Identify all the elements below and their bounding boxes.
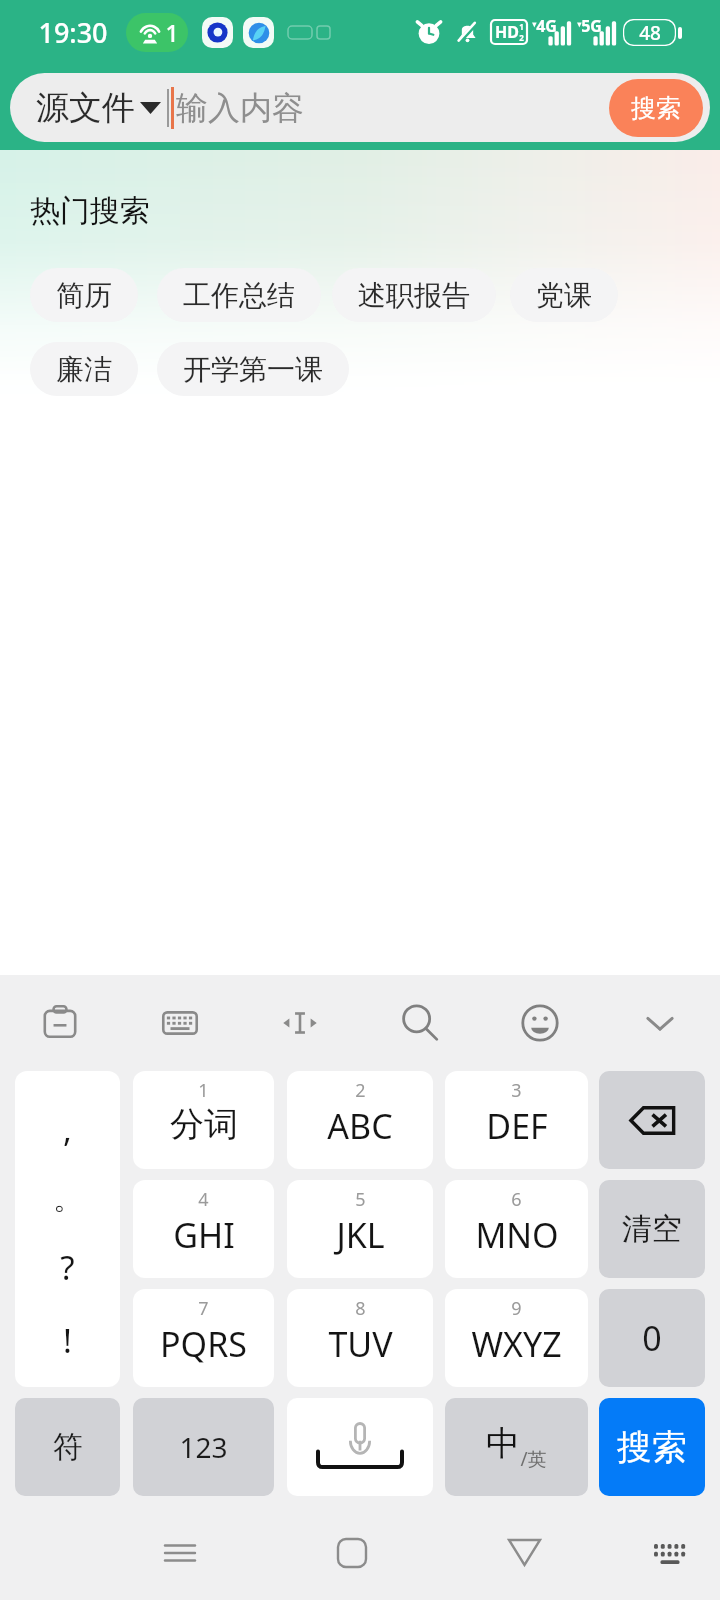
staticText: 9	[511, 1296, 522, 1321]
button[interactable]: 6	[445, 1180, 588, 1278]
button[interactable]: Emoji	[480, 975, 600, 1071]
button[interactable]: 搜索	[599, 1398, 705, 1496]
button[interactable]: Voice input	[287, 1398, 433, 1496]
staticText: 1	[198, 1078, 209, 1103]
button[interactable]: 清空	[599, 1180, 705, 1278]
button[interactable]: 0	[599, 1289, 705, 1387]
button[interactable]: Backspace	[599, 1071, 705, 1169]
staticText: 开学第一课	[183, 352, 323, 387]
staticText: 源文件	[36, 87, 135, 129]
staticText: 搜索	[617, 1425, 687, 1469]
staticText: 4G	[536, 15, 557, 37]
staticText: 廉洁	[56, 352, 112, 387]
staticText: 述职报告	[358, 278, 470, 313]
staticText: 中	[486, 1422, 520, 1465]
staticText: ?	[60, 1245, 75, 1290]
staticText: WXYZ	[471, 1321, 562, 1367]
staticText: TUV	[328, 1321, 393, 1367]
button[interactable]: 9	[445, 1289, 588, 1387]
staticText: 0	[642, 1315, 662, 1361]
button[interactable]: 4	[133, 1180, 274, 1278]
staticText: 1	[519, 21, 524, 32]
staticText: GHI	[173, 1212, 235, 1258]
button[interactable]: 123	[133, 1398, 274, 1496]
button[interactable]: Switch language	[445, 1398, 588, 1496]
staticText: 19:30	[38, 14, 108, 51]
staticText: 4	[198, 1187, 209, 1212]
button[interactable]: 工作总结	[157, 268, 321, 322]
staticText: 输入内容	[176, 88, 304, 128]
button[interactable]: 1	[133, 1071, 274, 1169]
staticText: 符	[53, 1428, 83, 1466]
staticText: 5G	[581, 15, 602, 37]
staticText: ABC	[327, 1103, 393, 1149]
button[interactable]: 3	[445, 1071, 588, 1169]
button[interactable]: Keyboard	[624, 1505, 716, 1600]
staticText: JKL	[336, 1212, 385, 1258]
button[interactable]: Back	[478, 1505, 570, 1600]
staticText: 工作总结	[183, 278, 295, 313]
staticText: 8	[355, 1296, 366, 1321]
button[interactable]: 述职报告	[332, 268, 496, 322]
button[interactable]: 源文件	[10, 73, 710, 142]
button[interactable]: Clipboard	[0, 975, 120, 1071]
staticText: 48	[639, 20, 661, 46]
staticText: 6	[511, 1187, 522, 1212]
button[interactable]: 搜索	[609, 79, 703, 137]
staticText: !	[63, 1318, 72, 1363]
button[interactable]: 7	[133, 1289, 274, 1387]
staticText: /英	[520, 1446, 547, 1472]
button[interactable]: 5	[287, 1180, 433, 1278]
staticText: 7	[198, 1296, 209, 1321]
staticText: 123	[179, 1428, 228, 1466]
button[interactable]: Home	[306, 1505, 398, 1600]
staticText: ,	[63, 1107, 72, 1152]
staticText: MNO	[475, 1212, 559, 1258]
button[interactable]: 党课	[510, 268, 618, 322]
button[interactable]: Keyboard layout	[120, 975, 240, 1071]
staticText: DEF	[486, 1103, 548, 1149]
staticText: 搜索	[631, 93, 681, 124]
button[interactable]: Punctuation	[15, 1071, 120, 1387]
staticText: 。	[53, 1180, 83, 1218]
staticText: 1	[165, 17, 179, 48]
button[interactable]: 2	[287, 1071, 433, 1169]
staticText: 2	[519, 32, 524, 43]
staticText: 简历	[56, 278, 112, 313]
staticText: 分词	[170, 1103, 238, 1146]
button[interactable]: 简历	[30, 268, 138, 322]
staticText: 热门搜索	[30, 192, 150, 230]
staticText: 3	[511, 1078, 522, 1103]
staticText: 2	[355, 1078, 366, 1103]
button[interactable]: Recents	[134, 1505, 226, 1600]
button[interactable]: Search	[360, 975, 480, 1071]
staticText: 5	[355, 1187, 366, 1212]
button[interactable]: 开学第一课	[157, 342, 349, 396]
staticText: HD	[495, 21, 519, 43]
button[interactable]: 廉洁	[30, 342, 138, 396]
staticText: 清空	[622, 1210, 682, 1248]
staticText: 党课	[536, 278, 592, 313]
button[interactable]: 符	[15, 1398, 120, 1496]
staticText: PQRS	[160, 1321, 247, 1367]
button[interactable]: Move cursor	[240, 975, 360, 1071]
button[interactable]: Hide keyboard	[600, 975, 720, 1071]
button[interactable]: 8	[287, 1289, 433, 1387]
